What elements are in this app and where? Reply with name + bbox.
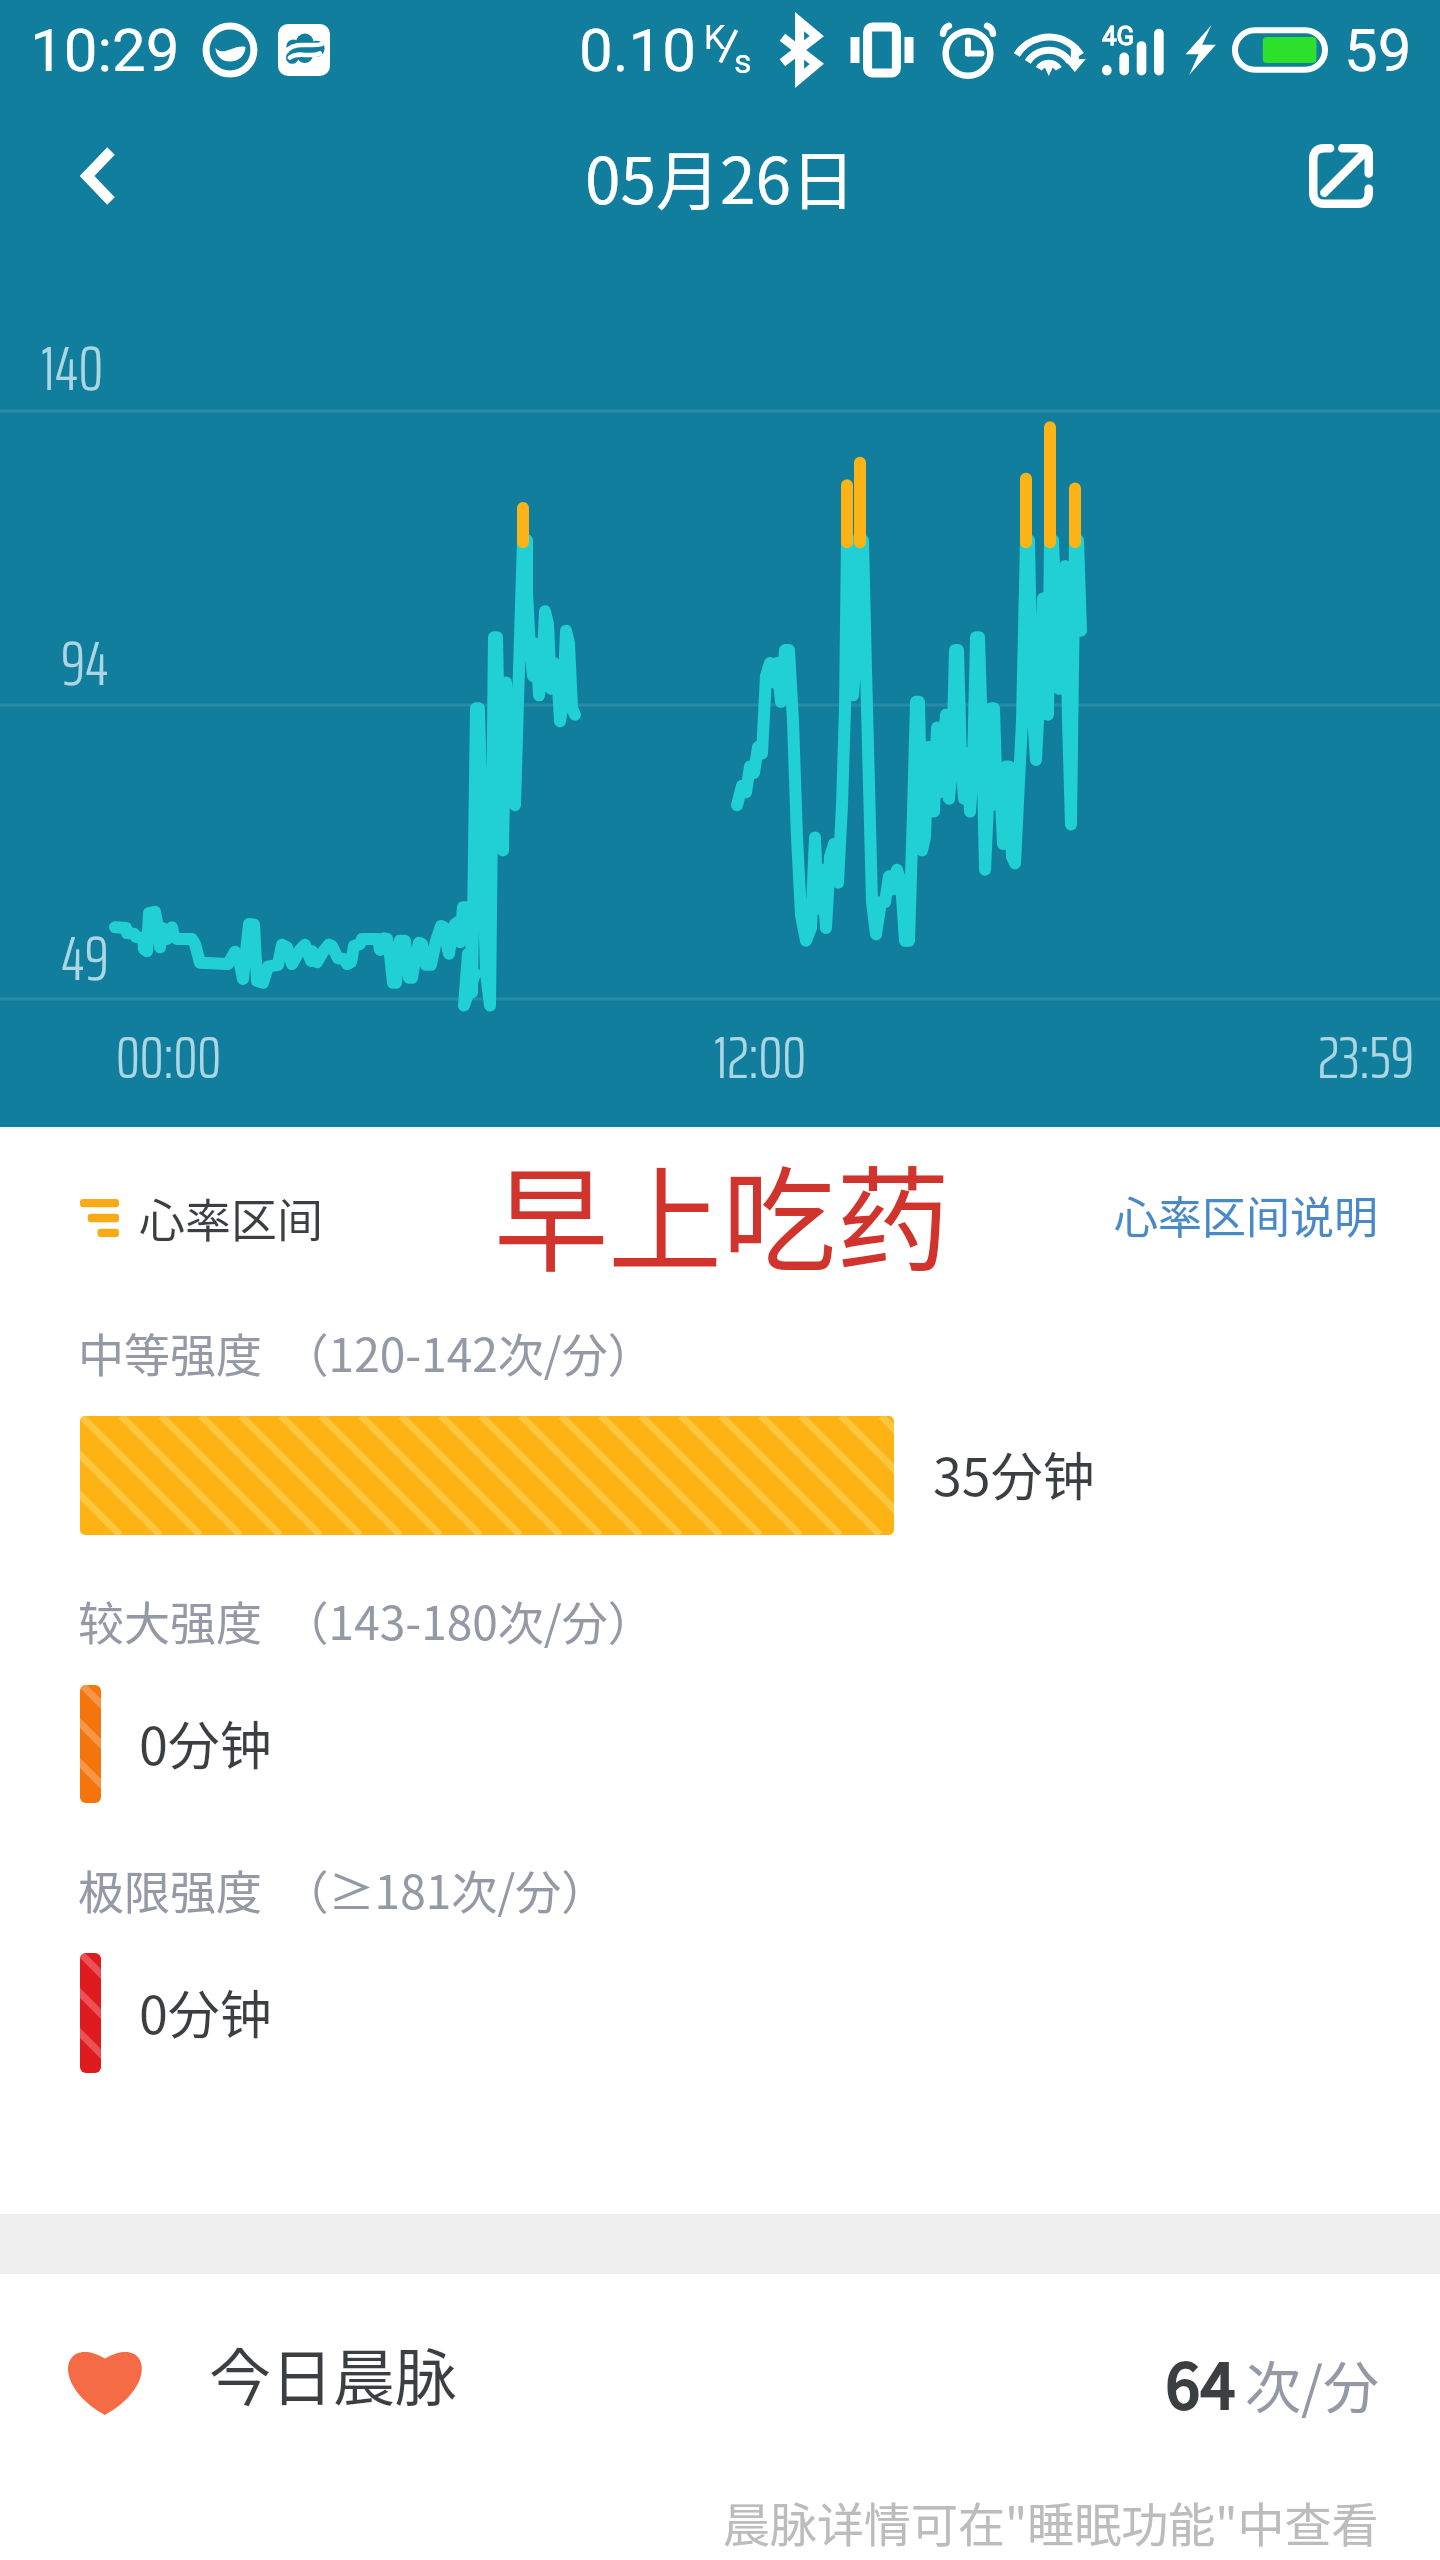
staticText: 00:00 (116, 1010, 222, 1104)
staticText: 中等强度 （120-142次/分） (78, 1319, 654, 1386)
button[interactable]: 今日晨脉 (0, 2274, 1440, 2474)
staticText: 10:29 (30, 15, 180, 85)
staticText: 0分钟 (139, 1705, 272, 1780)
staticText: 35分钟 (933, 1436, 1095, 1511)
staticText: 次/分 (1245, 2343, 1379, 2424)
staticText: 极限强度 （≥181次/分） (78, 1856, 608, 1923)
staticText: 49 (61, 910, 109, 1008)
staticText: 0.10 (579, 15, 696, 85)
button[interactable]: 心率区间说明 (1114, 1183, 1378, 1247)
staticText: K (704, 17, 726, 57)
staticText: 140 (41, 320, 104, 418)
staticText: 94 (61, 615, 109, 713)
staticText: 早上吃药 (494, 1130, 951, 1295)
button[interactable]: Share (1242, 100, 1440, 252)
staticText: s (734, 41, 752, 81)
staticText: 晨脉详情可在"睡眠功能"中查看 (723, 2487, 1379, 2555)
staticText: 23:59 (1318, 1010, 1414, 1104)
button[interactable]: Back (0, 100, 198, 252)
staticText: 4G (1102, 21, 1135, 51)
staticText: 0分钟 (139, 1974, 272, 2049)
staticText: 今日晨脉 (209, 2329, 458, 2419)
staticText: 较大强度 （143-180次/分） (78, 1587, 654, 1654)
staticText: 心率区间 (139, 1184, 323, 1251)
staticText: 05月26日 (585, 130, 856, 223)
staticText: 12:00 (714, 1010, 807, 1104)
staticText: 64 (1165, 2337, 1236, 2427)
staticText: 59 (1344, 15, 1412, 85)
